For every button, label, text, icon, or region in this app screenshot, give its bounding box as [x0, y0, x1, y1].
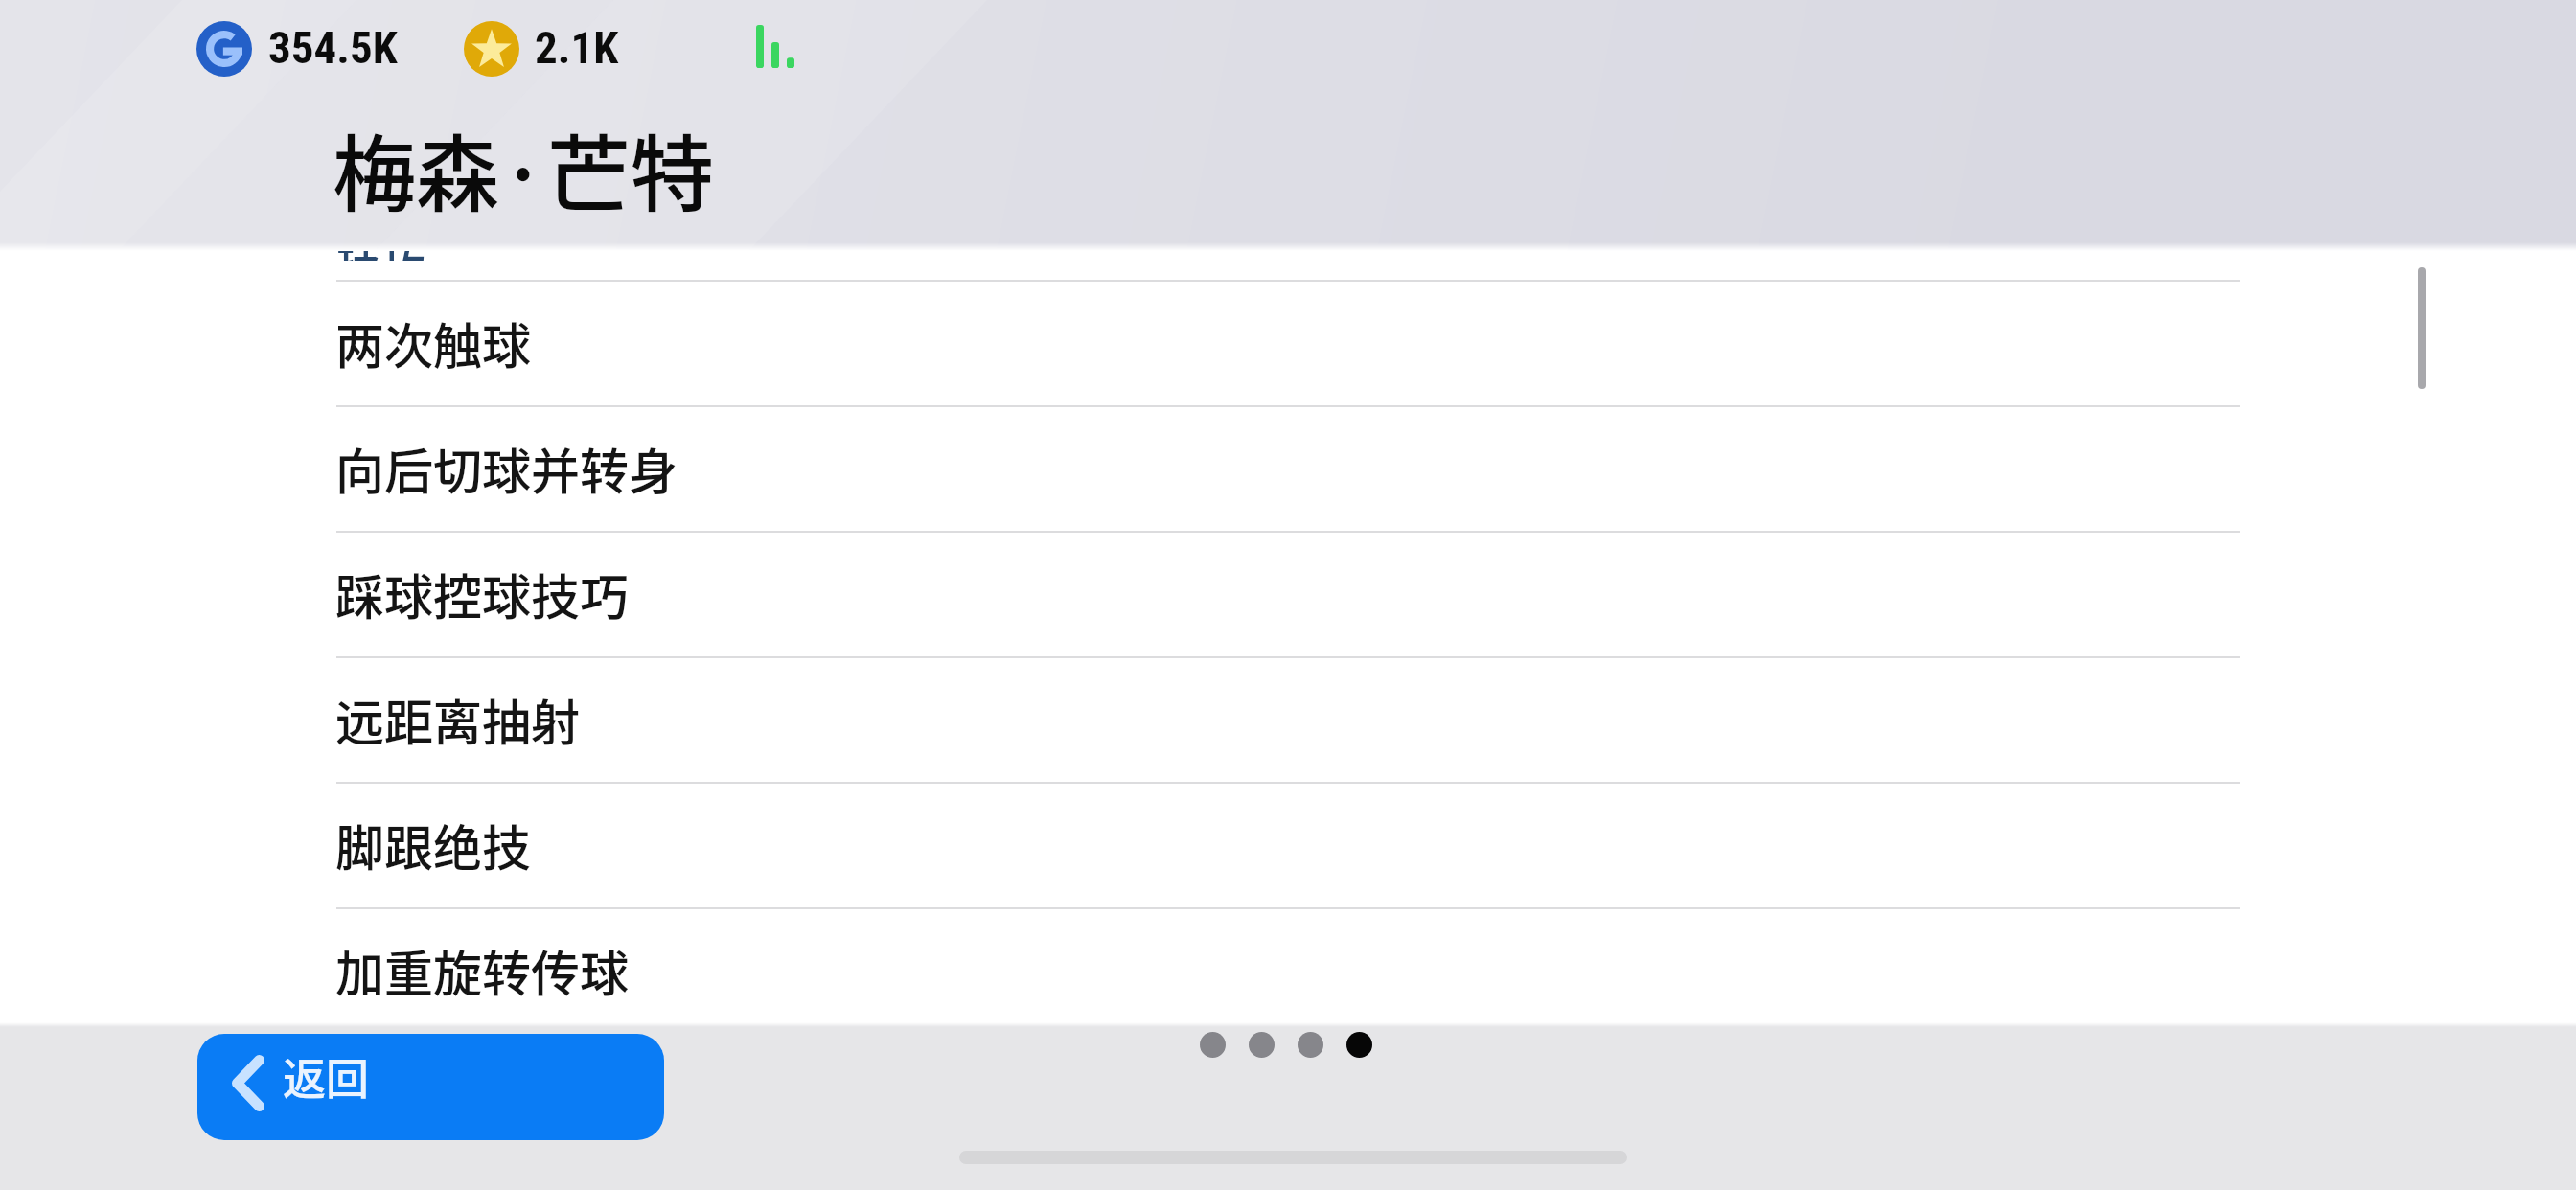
button[interactable]: 两次触球 — [0, 280, 2576, 405]
staticText: 返回 — [283, 1045, 370, 1108]
button[interactable]: Stars — [464, 21, 519, 77]
button[interactable]: Coins — [196, 21, 252, 77]
button[interactable]: Page 1 — [1200, 1032, 1226, 1058]
button[interactable]: Page 2 — [1249, 1032, 1275, 1058]
button[interactable]: 加重旋转传球 — [0, 907, 2576, 1033]
staticText: 梅森·芒特 — [333, 108, 714, 229]
staticText: 两次触球 — [335, 308, 532, 378]
other: Back — [232, 1055, 264, 1111]
staticText: 354.5K — [268, 21, 398, 74]
staticText: 向后切球并转身 — [335, 433, 678, 504]
button[interactable]: Page 3 — [1298, 1032, 1323, 1058]
button[interactable]: 远距离抽射 — [0, 656, 2576, 782]
button[interactable]: 脚跟绝技 — [0, 782, 2576, 907]
button[interactable]: Activity — [756, 25, 794, 68]
staticText: 踩球控球技巧 — [335, 559, 630, 629]
staticText: 技巧 — [336, 225, 426, 261]
button[interactable]: Page 4 — [1346, 1032, 1372, 1058]
button[interactable]: 向后切球并转身 — [0, 405, 2576, 531]
button[interactable]: Back — [197, 1034, 664, 1140]
staticText: 加重旋转传球 — [335, 935, 630, 1006]
button[interactable]: 踩球控球技巧 — [0, 531, 2576, 656]
staticText: 2.1K — [535, 21, 619, 74]
staticText: 脚跟绝技 — [335, 810, 532, 881]
staticText: 远距离抽射 — [335, 684, 581, 755]
